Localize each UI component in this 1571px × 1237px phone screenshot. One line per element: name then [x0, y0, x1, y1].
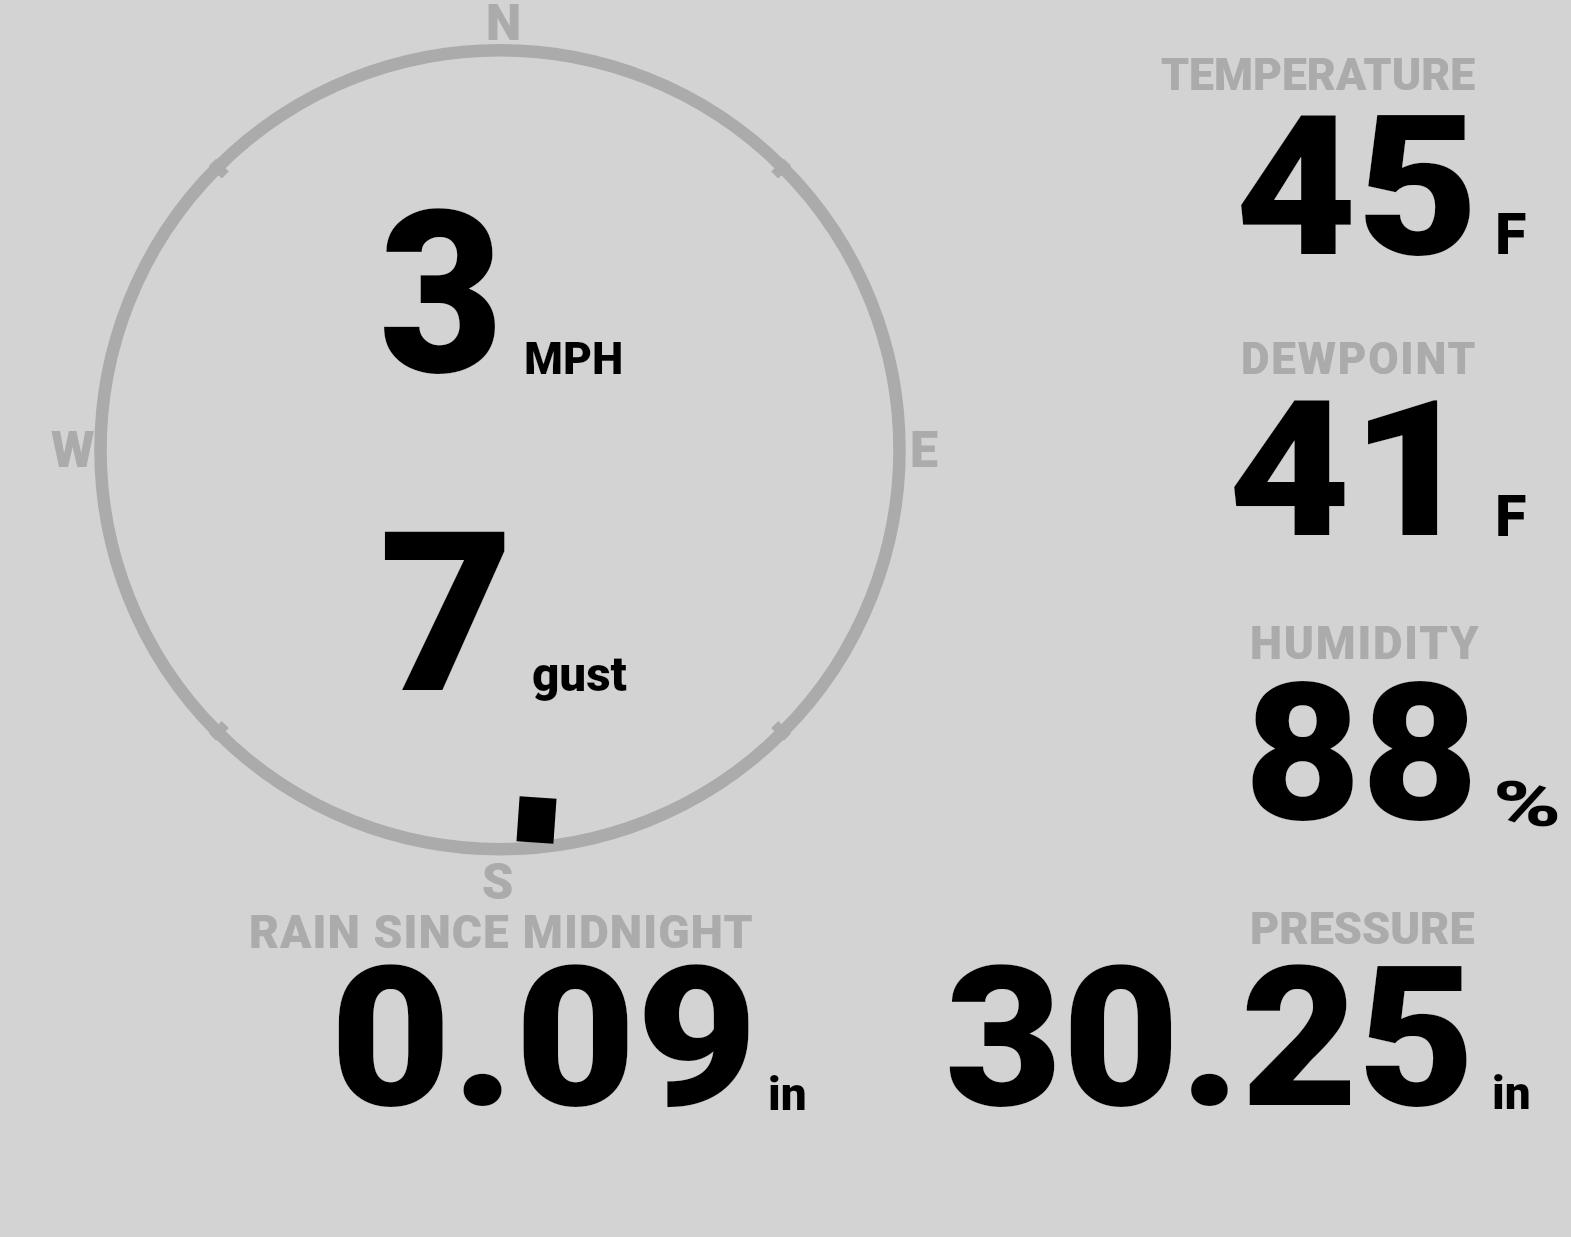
- staticText: F: [1495, 483, 1527, 551]
- staticText: 0.09: [330, 925, 759, 1152]
- button[interactable]: Temperature 45 F: [1150, 45, 1550, 270]
- staticText: TEMPERATURE: [1161, 49, 1476, 101]
- staticText: E: [910, 421, 938, 480]
- staticText: 3: [379, 162, 503, 427]
- staticText: in: [768, 1067, 807, 1121]
- staticText: %: [1493, 768, 1562, 842]
- staticText: N: [486, 0, 522, 53]
- button[interactable]: Rain since midnight 0.09 in: [240, 900, 820, 1115]
- staticText: 41: [1228, 360, 1474, 581]
- staticText: F: [1495, 201, 1527, 269]
- staticText: PRESSURE: [1250, 902, 1475, 955]
- button[interactable]: Pressure 30.25 in: [930, 900, 1530, 1115]
- staticText: DEWPOINT: [1241, 333, 1478, 385]
- staticText: S: [482, 853, 514, 912]
- button[interactable]: Wind speed and direction: [90, 40, 910, 860]
- staticText: RAIN SINCE MIDNIGHT: [249, 905, 754, 959]
- staticText: 30.25: [945, 925, 1476, 1152]
- button[interactable]: Humidity 88 percent: [1150, 612, 1550, 837]
- staticText: 88: [1244, 642, 1479, 866]
- staticText: 7: [379, 484, 514, 744]
- staticText: HUMIDITY: [1250, 617, 1481, 670]
- staticText: MPH: [524, 333, 624, 385]
- staticText: gust: [532, 646, 627, 702]
- staticText: W: [51, 421, 95, 480]
- staticText: in: [1492, 1066, 1531, 1120]
- button[interactable]: Dewpoint 41 F: [1150, 330, 1550, 550]
- staticText: 45: [1235, 74, 1479, 301]
